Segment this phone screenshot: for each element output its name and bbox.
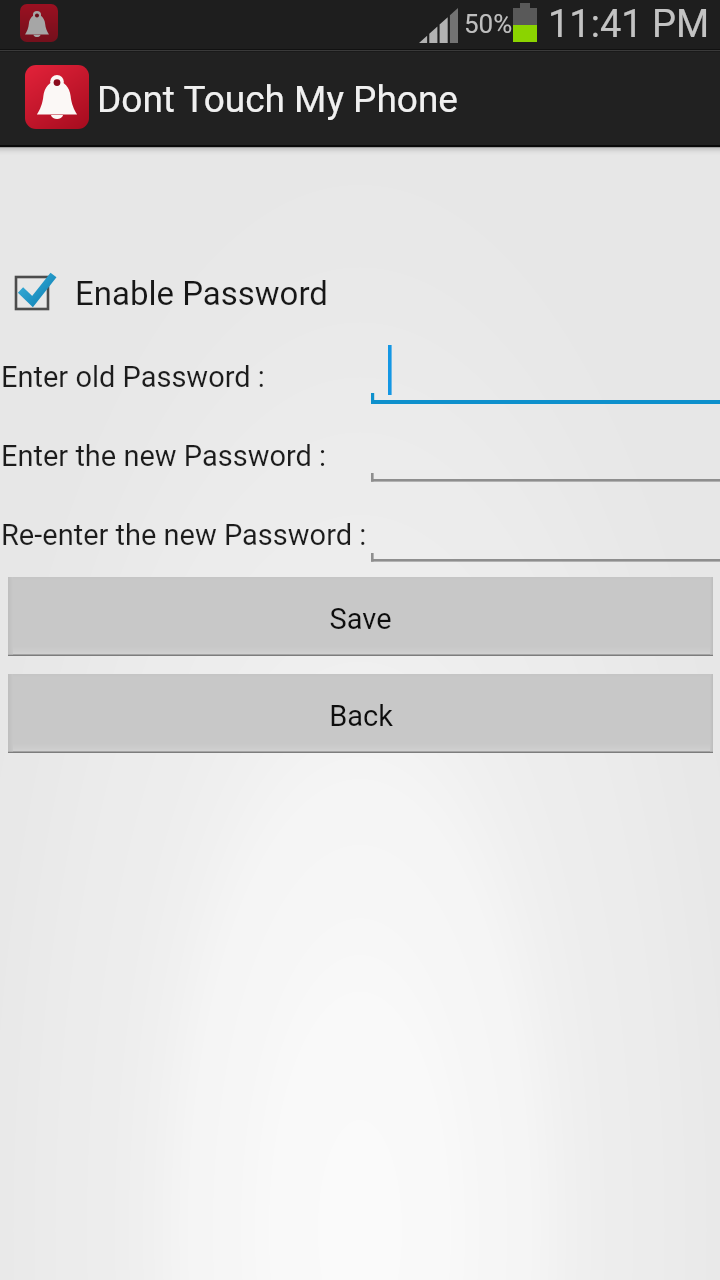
staticText: 50% bbox=[464, 9, 513, 39]
staticText: Enable Password bbox=[75, 274, 328, 313]
button[interactable] bbox=[371, 500, 720, 566]
button[interactable] bbox=[371, 340, 720, 406]
staticText: 11:41 PM bbox=[548, 2, 710, 47]
staticText: Re-enter the new Password : bbox=[1, 518, 367, 552]
button[interactable]: App icon bbox=[25, 65, 89, 129]
button[interactable]: Back bbox=[8, 674, 713, 753]
button[interactable]: Save bbox=[8, 577, 713, 656]
button[interactable] bbox=[371, 420, 720, 486]
staticText: Back bbox=[329, 699, 393, 733]
staticText: Enter old Password : bbox=[1, 360, 265, 394]
staticText: Save bbox=[329, 602, 392, 636]
staticText: Dont Touch My Phone bbox=[97, 78, 458, 121]
button[interactable]: Enable Password bbox=[6, 265, 328, 321]
staticText: Enter the new Password : bbox=[1, 439, 327, 473]
